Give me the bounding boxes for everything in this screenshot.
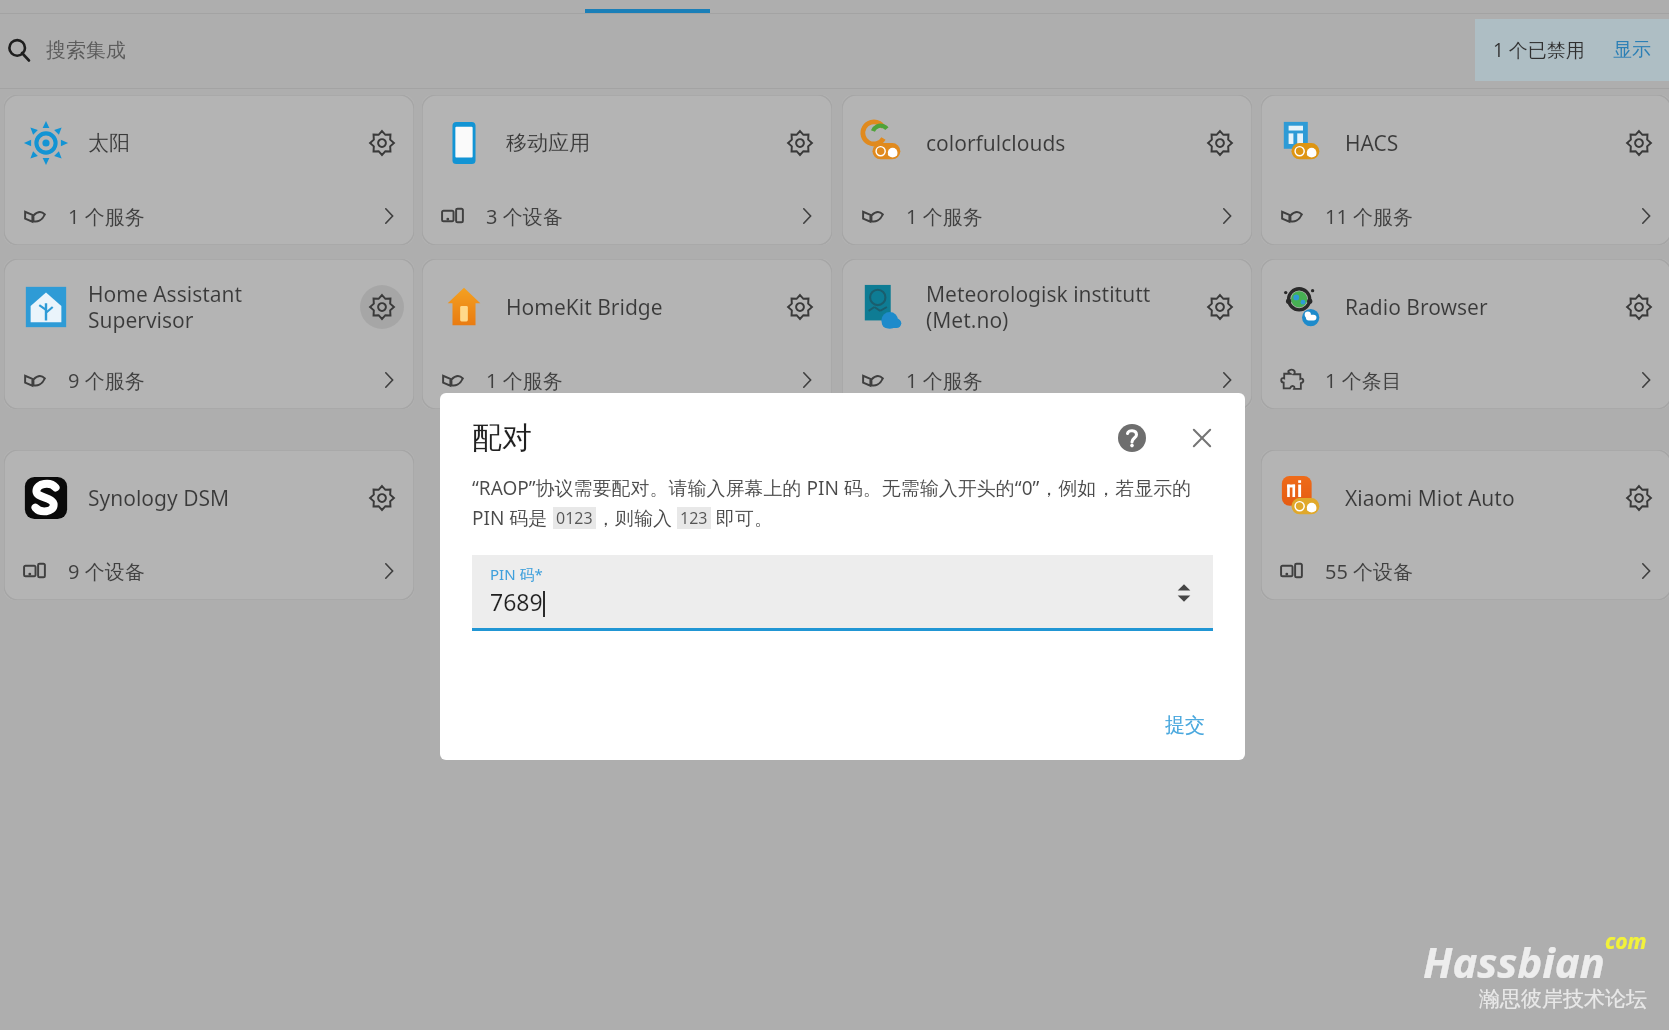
staticText: HACS — [1345, 129, 1617, 158]
staticText: colorfulclouds — [926, 129, 1198, 158]
staticText: Meteorologisk institutt (Met.no) — [926, 280, 1198, 335]
staticText: 1 个已禁用 — [1493, 37, 1585, 63]
staticText: 11 个服务 — [1325, 203, 1414, 230]
staticText: 配对 — [472, 419, 532, 457]
staticText: 1 个服务 — [906, 367, 983, 394]
staticText: Home Assistant Supervisor — [88, 280, 360, 335]
button[interactable]: 移动应用 — [422, 95, 832, 245]
staticText: ，则输入 — [596, 505, 677, 531]
staticText: HomeKit Bridge — [506, 293, 778, 322]
button[interactable]: Settings — [1198, 285, 1242, 329]
staticText: 9 个设备 — [68, 558, 145, 585]
staticText: 1 个服务 — [486, 367, 563, 394]
button[interactable]: HomeKit Bridge — [422, 259, 832, 409]
staticText: 搜索集成 — [46, 38, 126, 63]
staticText: Hassbian — [1423, 933, 1605, 990]
button[interactable]: 1 个已禁用 — [1475, 19, 1669, 81]
staticText: 1 个服务 — [68, 203, 145, 230]
staticText: PIN 码是 — [472, 505, 553, 531]
staticText: Radio Browser — [1345, 293, 1617, 322]
button[interactable]: Settings — [778, 121, 822, 165]
staticText: Xiaomi Miot Auto — [1345, 484, 1617, 513]
staticText: 移动应用 — [506, 130, 778, 156]
button[interactable]: Settings — [778, 285, 822, 329]
staticText: 瀚思彼岸技术论坛 — [1479, 986, 1647, 1012]
staticText: 显示 — [1613, 38, 1651, 62]
staticText: PIN 码* — [490, 564, 543, 584]
staticText: 即可。 — [711, 505, 773, 531]
staticText: 55 个设备 — [1325, 558, 1414, 585]
button[interactable]: 提交 — [1155, 705, 1215, 746]
staticText: 0123 — [556, 507, 593, 529]
button[interactable]: Meteorologisk institutt (Met.no) — [842, 259, 1252, 409]
staticText: 提交 — [1165, 713, 1205, 738]
button[interactable]: Settings — [360, 285, 404, 329]
button[interactable]: 太阳 — [4, 95, 414, 245]
staticText: 123 — [680, 507, 708, 529]
staticText: 1 个条目 — [1325, 367, 1402, 394]
button[interactable]: Settings — [1617, 285, 1661, 329]
staticText: 太阳 — [88, 130, 360, 156]
button[interactable]: HACS — [1261, 95, 1669, 245]
other: Stepper — [1177, 580, 1191, 606]
other: Search — [6, 37, 32, 63]
staticText: 9 个服务 — [68, 367, 145, 394]
button[interactable]: Close — [1179, 415, 1225, 461]
staticText: “RAOP”协议需要配对。请输入屏幕上的 PIN 码。无需输入开头的“0”，例如… — [472, 475, 1192, 501]
button[interactable]: Help — [1109, 415, 1155, 461]
button[interactable]: Synology DSM — [4, 450, 414, 600]
button[interactable]: Home Assistant Supervisor — [4, 259, 414, 409]
staticText: 1 个服务 — [906, 203, 983, 230]
button[interactable]: PIN 码* — [472, 555, 1213, 631]
button[interactable]: Xiaomi Miot Auto — [1261, 450, 1669, 600]
button[interactable]: Settings — [360, 476, 404, 520]
button[interactable]: Radio Browser — [1261, 259, 1669, 409]
button[interactable]: Settings — [360, 121, 404, 165]
button[interactable]: Settings — [1198, 121, 1242, 165]
button[interactable]: colorfulclouds — [842, 95, 1252, 245]
staticText: Synology DSM — [88, 484, 360, 513]
staticText: 7689 — [490, 586, 543, 617]
staticText: 3 个设备 — [486, 203, 563, 230]
button[interactable]: Settings — [1617, 476, 1661, 520]
button[interactable]: Settings — [1617, 121, 1661, 165]
staticText: com — [1605, 927, 1647, 956]
